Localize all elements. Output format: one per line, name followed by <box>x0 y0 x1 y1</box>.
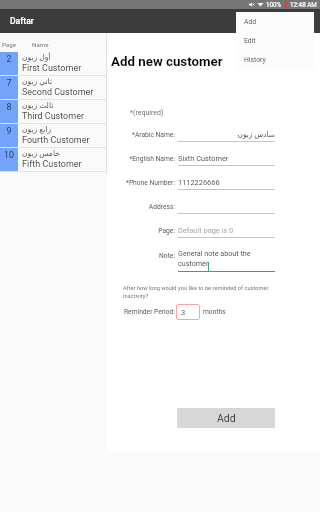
button[interactable]: Daftar <box>0 9 320 33</box>
staticText: Default page is 0 <box>178 226 275 235</box>
staticText: General note about the customer <box>178 249 254 268</box>
staticText: Fifth Customer <box>22 159 82 170</box>
staticText: *Phone Number: <box>113 179 175 187</box>
staticText: Add <box>244 18 257 26</box>
staticText: أول زبون <box>22 53 51 62</box>
button[interactable]: 7 <box>0 76 107 100</box>
staticText: Name <box>32 41 49 48</box>
staticText: 12:48 AM <box>290 1 317 8</box>
staticText: سادس زبون <box>178 130 275 139</box>
staticText: Add new customer <box>111 54 223 70</box>
staticText: 8 <box>0 102 18 112</box>
staticText: Third Customer <box>22 111 84 122</box>
staticText: ثاني زبون <box>22 77 53 86</box>
staticText: Add <box>217 412 236 424</box>
staticText: After how long would you like to be remi… <box>123 285 271 300</box>
button[interactable]: 8 <box>0 100 107 124</box>
staticText: months <box>203 308 226 316</box>
staticText: 1112226666 <box>178 178 275 187</box>
staticText: Address: <box>113 203 175 211</box>
staticText: رابع زبون <box>22 125 52 134</box>
staticText: 100% <box>266 1 282 8</box>
button[interactable]: 3 <box>176 304 200 320</box>
button[interactable]: 2 <box>0 52 107 76</box>
staticText: History <box>244 56 266 64</box>
staticText: Fourth Customer <box>22 135 90 146</box>
staticText: First Customer <box>22 63 82 74</box>
staticText: Reminder Period: <box>124 308 175 316</box>
staticText: 10 <box>0 150 18 160</box>
staticText: Note: <box>113 252 175 260</box>
button[interactable]: Add <box>236 12 314 31</box>
staticText: *English Name: <box>113 155 175 163</box>
staticText: *Arabic Name: <box>113 131 175 139</box>
button[interactable]: 10 <box>0 148 107 172</box>
staticText: 7 <box>0 78 18 88</box>
button[interactable]: Edit <box>236 31 314 50</box>
staticText: Sixth Customer <box>178 154 275 163</box>
staticText: Edit <box>244 37 256 45</box>
staticText: ثالث زبون <box>22 101 54 110</box>
staticText: 9 <box>0 126 18 136</box>
staticText: Second Customer <box>22 87 94 98</box>
button[interactable]: 9 <box>0 124 107 148</box>
button[interactable]: Add <box>177 408 275 428</box>
staticText: 2 <box>0 54 18 64</box>
staticText: Page: <box>113 227 175 235</box>
staticText: *(required) <box>130 109 164 117</box>
staticText: 3 <box>181 308 186 317</box>
staticText: Daftar <box>10 16 34 26</box>
button[interactable]: History <box>236 50 314 69</box>
staticText: خامس زبون <box>22 149 60 158</box>
staticText: Page <box>0 41 18 48</box>
